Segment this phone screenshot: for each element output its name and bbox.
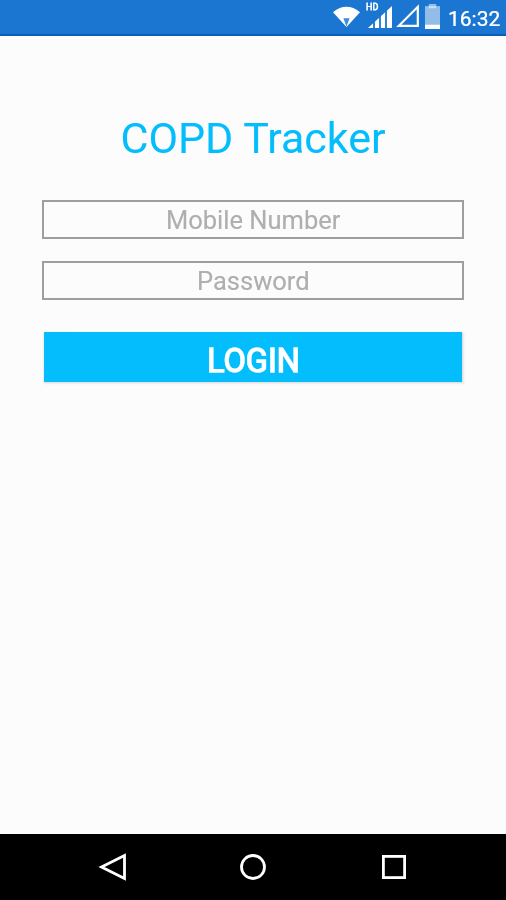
staticText: HD	[366, 2, 379, 13]
staticText: COPD Tracker	[0, 113, 506, 163]
button[interactable]: Home	[220, 834, 286, 900]
staticText: 16:32	[448, 7, 501, 32]
button[interactable]: Password	[42, 261, 464, 300]
button[interactable]: Mobile Number	[42, 200, 464, 239]
button[interactable]: LOGIN	[44, 332, 462, 382]
other: Mobile signal	[368, 6, 392, 28]
other: No SIM signal	[398, 6, 419, 27]
button[interactable]: Recent apps	[361, 834, 427, 900]
staticText: Password	[197, 266, 310, 296]
other: Wi-Fi	[333, 6, 360, 27]
button[interactable]: Back	[80, 834, 146, 900]
other: Battery	[425, 4, 440, 29]
staticText: Mobile Number	[166, 205, 341, 235]
staticText: LOGIN	[207, 342, 300, 380]
